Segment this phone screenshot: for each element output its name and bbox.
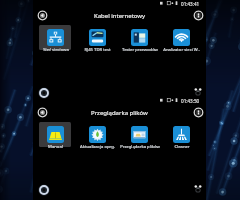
button[interactable]: Back: [37, 10, 48, 21]
button[interactable]: Analizator sieci W..: [160, 25, 202, 55]
staticText: Manual: [48, 144, 63, 150]
staticText: RJ45 TDR test: [84, 47, 111, 53]
button[interactable]: Cleaner: [160, 122, 202, 152]
button[interactable]: Recent apps: [192, 181, 204, 193]
staticText: 01:43:41: [181, 1, 200, 7]
button[interactable]: Aktualizacja oprg.: [76, 122, 118, 152]
button[interactable]: Manual: [34, 122, 76, 152]
button[interactable]: Recent apps: [192, 84, 204, 96]
button[interactable]: Back: [37, 107, 48, 118]
staticText: Kabel internetowy: [94, 12, 146, 20]
staticText: 01:43:50: [181, 98, 200, 104]
staticText: Przeglądarka plików: [120, 144, 160, 150]
button[interactable]: Info: [193, 107, 204, 118]
button[interactable]: Tester przewodów: [118, 25, 160, 55]
staticText: Aktualizacja oprg.: [80, 144, 115, 150]
button[interactable]: Home: [38, 87, 50, 99]
staticText: Analizator sieci W..: [163, 47, 200, 53]
button[interactable]: Home: [38, 184, 50, 196]
button[interactable]: Info: [193, 10, 204, 21]
staticText: Cleaner: [174, 144, 190, 150]
button[interactable]: Przeglądarka plików: [118, 122, 160, 152]
button[interactable]: RJ45 TDR test: [76, 25, 118, 55]
staticText: Przeglądarka plików: [91, 109, 148, 117]
staticText: Sieć sieciowa: [43, 47, 69, 53]
staticText: Tester przewodów: [122, 47, 158, 53]
button[interactable]: Sieć sieciowa: [34, 25, 76, 55]
